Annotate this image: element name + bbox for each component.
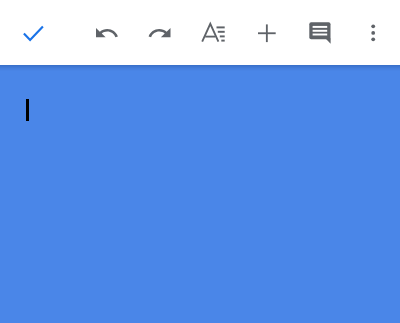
button[interactable]: Text formatting (191, 11, 235, 55)
button[interactable]: More options (351, 11, 395, 55)
button[interactable]: Done (12, 11, 56, 55)
button[interactable]: Undo (85, 11, 129, 55)
button[interactable]: Insert (245, 11, 289, 55)
button[interactable]: Comments (298, 11, 342, 55)
button[interactable]: Redo (138, 11, 182, 55)
